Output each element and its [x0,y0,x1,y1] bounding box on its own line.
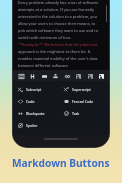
staticText: Every problem already has a ton of softw… [18,0,99,5]
staticText: enables maximal mobility of the user's d… [18,56,98,61]
button[interactable]: Subscript [13,83,59,95]
button[interactable]: Media [86,72,94,80]
staticText: Fenced Code [72,99,94,104]
staticText: pick which software they want to use and… [18,28,99,33]
button[interactable]: Task [59,107,109,119]
staticText: Subscript [26,87,42,92]
staticText: attempts at a solution. If you are hones… [18,7,95,12]
staticText: Superscript [72,87,91,92]
staticText: Spoiler [26,123,38,128]
staticText: approach is the mightiest to there be. I… [18,49,91,54]
staticText: Markdown Buttons [12,156,110,170]
staticText: **Example:** We believe that the plain t… [18,42,98,47]
button[interactable]: Picture [97,72,105,80]
button[interactable]: Text style [51,72,59,80]
staticText: Task [72,111,80,116]
button[interactable]: Image [74,72,82,80]
staticText: Blockquote [26,111,45,116]
staticText: allow your users to choose their means, … [18,21,96,26]
button[interactable]: Blockquote [13,107,59,119]
staticText: interested in the solution to a problem,… [18,14,98,19]
button[interactable]: Bold [40,72,48,80]
staticText: between different software. [18,63,69,68]
button[interactable]: Fenced Code [59,95,109,107]
staticText: Code [26,99,35,104]
button[interactable]: Code [13,95,59,107]
button[interactable]: Superscript [59,83,109,95]
button[interactable]: Heading [28,72,36,80]
button[interactable]: Paragraph [17,72,25,80]
button[interactable]: Spoiler [13,119,59,131]
button[interactable]: Link [63,72,71,80]
staticText: switch with minimum of fuss. [18,35,72,40]
